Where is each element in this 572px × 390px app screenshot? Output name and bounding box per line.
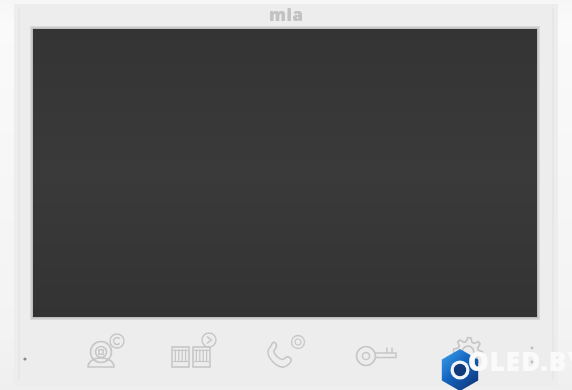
button[interactable]: Camera view — [69, 326, 133, 384]
button[interactable]: Call / intercom — [252, 326, 316, 384]
staticText: OLED.BY — [468, 343, 572, 378]
button[interactable]: Unlock door — [346, 327, 410, 385]
button[interactable]: Settings — [436, 323, 500, 381]
button[interactable]: Gate open — [159, 326, 223, 384]
staticText: mia — [269, 3, 304, 26]
